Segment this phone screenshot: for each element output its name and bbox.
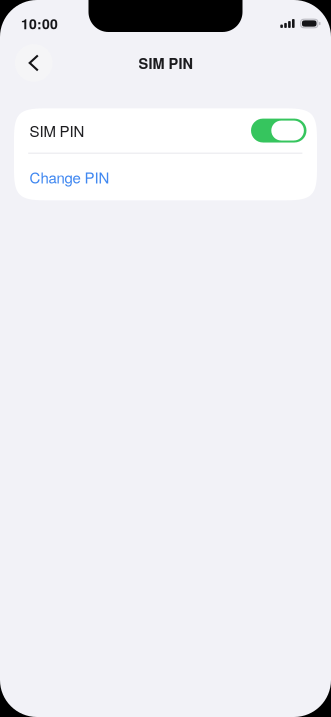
button[interactable]: Back bbox=[15, 44, 52, 82]
staticText: Change PIN bbox=[29, 166, 109, 188]
button[interactable]: SIM PIN bbox=[14, 108, 317, 153]
staticText: SIM PIN bbox=[138, 53, 192, 73]
staticText: 10:00 bbox=[21, 13, 58, 33]
staticText: SIM PIN bbox=[29, 120, 84, 141]
button[interactable]: Change PIN bbox=[14, 154, 317, 200]
